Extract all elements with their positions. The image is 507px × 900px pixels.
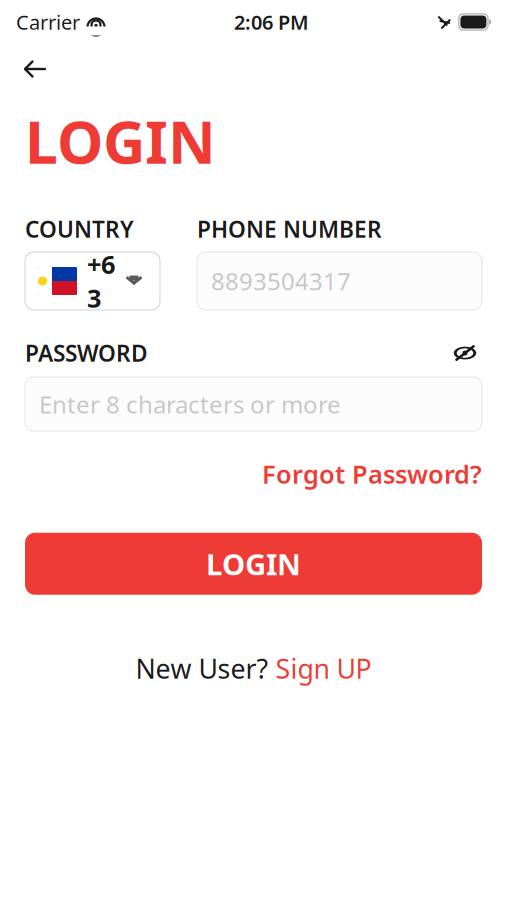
- staticText: 8893504317: [211, 265, 351, 297]
- staticText: Carrier: [16, 9, 80, 35]
- staticText: Sign UP: [275, 651, 371, 686]
- button[interactable]: LOGIN: [25, 533, 482, 595]
- staticText: Enter 8 characters or more: [39, 388, 341, 420]
- staticText: LOGIN: [206, 544, 301, 583]
- staticText: LOGIN: [25, 102, 216, 180]
- button[interactable]: Enter 8 characters or more: [25, 377, 482, 431]
- button[interactable]: Forgot Password?: [262, 453, 482, 495]
- button[interactable]: +63: [25, 252, 160, 310]
- button[interactable]: Sign UP: [275, 651, 371, 686]
- button[interactable]: Show password: [448, 341, 482, 365]
- button[interactable]: 8893504317: [197, 252, 482, 310]
- staticText: New User?: [135, 651, 275, 686]
- button[interactable]: Back: [0, 44, 70, 94]
- staticText: +63: [87, 247, 115, 315]
- staticText: Forgot Password?: [262, 457, 482, 491]
- staticText: PHONE NUMBER: [197, 214, 382, 244]
- staticText: 2:06 PM: [234, 9, 309, 35]
- staticText: COUNTRY: [25, 214, 134, 244]
- staticText: PASSWORD: [25, 338, 148, 368]
